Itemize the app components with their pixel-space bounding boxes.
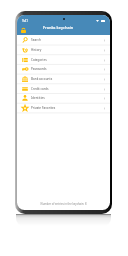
staticText: History bbox=[31, 48, 42, 52]
button[interactable]: Credit cards bbox=[17, 84, 110, 94]
button[interactable]: Search bbox=[17, 35, 110, 45]
staticText: Private Favorites bbox=[31, 106, 56, 110]
staticText: Franks keychain bbox=[43, 25, 74, 30]
button[interactable]: Keychain locked bbox=[18, 25, 28, 35]
staticText: 9:41 bbox=[22, 19, 29, 23]
button[interactable]: Identities bbox=[17, 93, 110, 103]
staticText: Bank accounts bbox=[31, 77, 53, 81]
staticText: Identities bbox=[31, 96, 45, 100]
button[interactable]: Bank accounts bbox=[17, 74, 110, 84]
staticText: Categories bbox=[31, 58, 47, 62]
staticText: Search bbox=[31, 38, 41, 42]
button[interactable]: Private Favorites bbox=[17, 103, 110, 113]
staticText: Number of entries in the keychain: 8 bbox=[17, 202, 110, 206]
staticText: Credit cards bbox=[31, 87, 49, 91]
button[interactable]: Categories bbox=[17, 55, 110, 65]
button[interactable]: History bbox=[17, 45, 110, 55]
button[interactable]: Passwords bbox=[17, 64, 110, 74]
staticText: Passwords bbox=[31, 67, 47, 71]
